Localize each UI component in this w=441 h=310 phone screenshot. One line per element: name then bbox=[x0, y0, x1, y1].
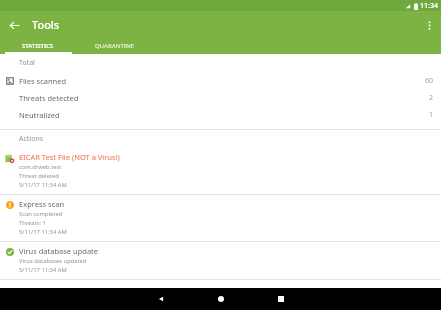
staticText: Virus databases updated bbox=[19, 257, 87, 265]
button[interactable]: Threats detected bbox=[0, 89, 441, 106]
button[interactable]: Virus database update bbox=[0, 242, 441, 279]
staticText: Neutralized bbox=[19, 110, 428, 120]
button[interactable]: Files scanned bbox=[0, 72, 441, 89]
button[interactable]: Back bbox=[4, 15, 24, 35]
staticText: Tools bbox=[32, 17, 60, 32]
button[interactable]: QUARANTINE bbox=[76, 38, 152, 54]
staticText: Files scanned bbox=[19, 76, 424, 86]
button[interactable]: Back bbox=[146, 288, 176, 310]
staticText: 1 bbox=[428, 110, 433, 120]
staticText: 2 bbox=[428, 93, 433, 103]
staticText: Express scan bbox=[19, 199, 65, 209]
staticText: Threats detected bbox=[19, 93, 428, 103]
button[interactable]: Neutralized bbox=[0, 106, 441, 123]
button[interactable]: Home bbox=[206, 288, 236, 310]
button[interactable]: More options bbox=[419, 15, 439, 35]
staticText: Scan completed bbox=[19, 210, 63, 218]
staticText: 11:34 bbox=[420, 1, 438, 11]
button[interactable]: Recent apps bbox=[266, 288, 296, 310]
staticText: 5/11/17 11:34 AM bbox=[19, 228, 67, 236]
staticText: Virus database update bbox=[19, 246, 99, 256]
staticText: Actions bbox=[19, 134, 44, 144]
staticText: com.drweb.test bbox=[19, 163, 62, 171]
staticText: Threats: 1 bbox=[19, 219, 46, 227]
staticText: 60 bbox=[424, 76, 433, 86]
staticText: Total bbox=[19, 58, 35, 68]
staticText: STATISTICS bbox=[22, 42, 54, 50]
button[interactable]: Express scan bbox=[0, 195, 441, 241]
staticText: 5/11/17 11:34 AM bbox=[19, 181, 67, 189]
button[interactable]: STATISTICS bbox=[0, 38, 76, 54]
staticText: 5/11/17 11:34 AM bbox=[19, 266, 67, 274]
staticText: QUARANTINE bbox=[95, 42, 134, 50]
staticText: Threat deleted bbox=[19, 172, 59, 180]
button[interactable]: EICAR Test File (NOT a Virus!) bbox=[0, 148, 441, 194]
staticText: EICAR Test File (NOT a Virus!) bbox=[19, 152, 120, 162]
